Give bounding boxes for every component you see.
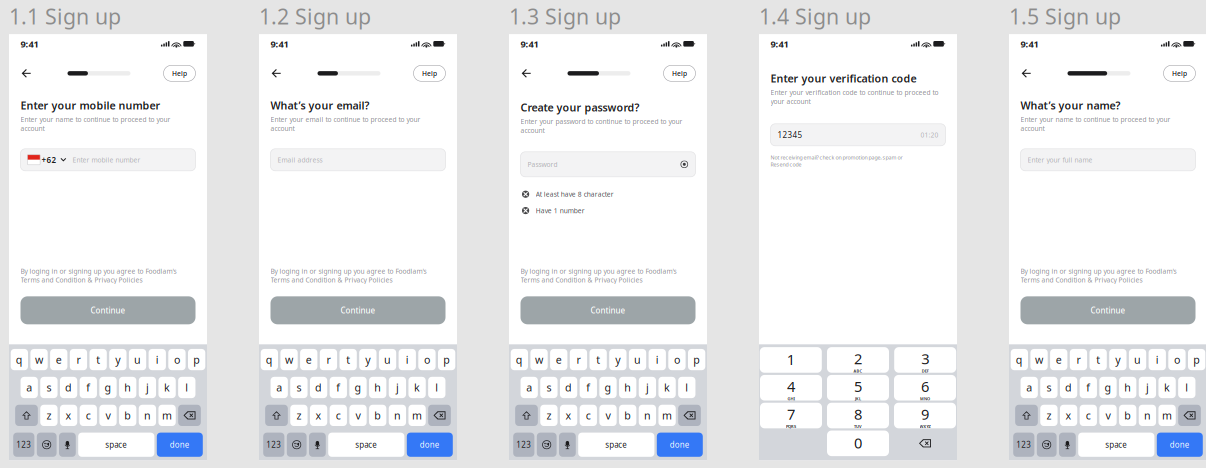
button[interactable]: e bbox=[550, 349, 567, 370]
button[interactable]: n bbox=[639, 405, 656, 426]
button[interactable]: 3 bbox=[894, 347, 956, 373]
button[interactable]: k bbox=[158, 377, 176, 398]
button[interactable]: h bbox=[1119, 377, 1136, 398]
button[interactable]: q bbox=[261, 349, 278, 370]
button[interactable]: p bbox=[188, 349, 205, 370]
button[interactable]: i bbox=[149, 349, 166, 370]
button[interactable]: Shift bbox=[265, 405, 288, 426]
button[interactable]: 12345 bbox=[770, 124, 945, 146]
button[interactable]: 123 bbox=[1013, 433, 1034, 457]
button[interactable]: l bbox=[678, 377, 695, 398]
button[interactable]: a bbox=[21, 377, 38, 398]
button[interactable]: q bbox=[11, 349, 28, 370]
button[interactable]: o bbox=[418, 349, 436, 370]
button[interactable]: space bbox=[1078, 433, 1154, 457]
button[interactable]: 0 bbox=[827, 430, 889, 456]
button[interactable]: d bbox=[1060, 377, 1077, 398]
button[interactable]: h bbox=[619, 377, 636, 398]
button[interactable]: space bbox=[328, 433, 404, 457]
button[interactable]: 1 bbox=[760, 347, 822, 373]
button[interactable]: b bbox=[369, 405, 386, 426]
button[interactable]: i bbox=[649, 349, 666, 370]
button[interactable]: k bbox=[658, 377, 676, 398]
button[interactable]: c bbox=[80, 405, 97, 426]
button[interactable]: r bbox=[320, 349, 337, 370]
button[interactable]: Shift bbox=[515, 405, 538, 426]
button[interactable]: o bbox=[1168, 349, 1186, 370]
button[interactable]: done bbox=[657, 433, 703, 457]
button[interactable]: w bbox=[530, 349, 548, 370]
button[interactable]: j bbox=[639, 377, 656, 398]
button[interactable]: Emoji bbox=[287, 433, 307, 457]
button[interactable]: x bbox=[310, 405, 327, 426]
button[interactable]: 6 bbox=[894, 375, 956, 400]
button[interactable]: l bbox=[1178, 377, 1195, 398]
button[interactable]: m bbox=[1158, 405, 1176, 426]
button[interactable]: o bbox=[668, 349, 686, 370]
button[interactable]: Help bbox=[1163, 65, 1195, 81]
button[interactable]: e bbox=[300, 349, 317, 370]
button[interactable]: Enter your full name bbox=[1020, 149, 1195, 171]
button[interactable]: a bbox=[1021, 377, 1038, 398]
button[interactable]: i bbox=[399, 349, 416, 370]
button[interactable]: Emoji bbox=[537, 433, 557, 457]
button[interactable]: Shift bbox=[1015, 405, 1038, 426]
button[interactable]: t bbox=[1089, 349, 1107, 370]
button[interactable]: v bbox=[349, 405, 367, 426]
button[interactable]: w bbox=[30, 349, 48, 370]
button[interactable]: i bbox=[1149, 349, 1166, 370]
button[interactable]: done bbox=[1157, 433, 1203, 457]
button[interactable]: Dictation bbox=[309, 433, 326, 457]
button[interactable]: 4 bbox=[760, 375, 822, 400]
button[interactable]: Delete bbox=[178, 405, 201, 426]
button[interactable]: Delete bbox=[1178, 405, 1201, 426]
button[interactable]: y bbox=[609, 349, 626, 370]
button[interactable]: v bbox=[99, 405, 117, 426]
button[interactable]: d bbox=[60, 377, 77, 398]
button[interactable]: j bbox=[139, 377, 156, 398]
button[interactable]: +62 bbox=[20, 149, 195, 171]
button[interactable]: 8 bbox=[827, 403, 889, 428]
button[interactable]: space bbox=[578, 433, 654, 457]
button[interactable]: h bbox=[369, 377, 386, 398]
button[interactable]: n bbox=[139, 405, 156, 426]
button[interactable]: Delete bbox=[894, 430, 956, 456]
button[interactable]: Continue bbox=[270, 296, 445, 324]
button[interactable]: v bbox=[599, 405, 617, 426]
button[interactable]: m bbox=[408, 405, 426, 426]
button[interactable]: l bbox=[178, 377, 195, 398]
button[interactable]: 123 bbox=[513, 433, 534, 457]
button[interactable]: Password bbox=[520, 152, 695, 177]
button[interactable]: s bbox=[540, 377, 558, 398]
button[interactable]: t bbox=[589, 349, 607, 370]
button[interactable]: e bbox=[50, 349, 67, 370]
button[interactable]: m bbox=[658, 405, 676, 426]
button[interactable]: s bbox=[1040, 377, 1057, 398]
button[interactable]: 123 bbox=[263, 433, 284, 457]
button[interactable]: p bbox=[438, 349, 455, 370]
button[interactable]: l bbox=[428, 377, 445, 398]
button[interactable]: Continue bbox=[1020, 296, 1195, 324]
button[interactable]: e bbox=[1050, 349, 1067, 370]
button[interactable]: z bbox=[540, 405, 558, 426]
button[interactable]: done bbox=[157, 433, 203, 457]
button[interactable]: Help bbox=[163, 65, 195, 81]
button[interactable]: 5 bbox=[827, 375, 889, 400]
button[interactable]: Delete bbox=[428, 405, 451, 426]
button[interactable]: y bbox=[1109, 349, 1126, 370]
button[interactable]: b bbox=[619, 405, 636, 426]
button[interactable]: x bbox=[1060, 405, 1077, 426]
button[interactable]: t bbox=[89, 349, 107, 370]
button[interactable]: v bbox=[1099, 405, 1117, 426]
button[interactable]: Email address bbox=[270, 149, 445, 171]
button[interactable]: Emoji bbox=[1037, 433, 1057, 457]
button[interactable]: z bbox=[1040, 405, 1057, 426]
button[interactable]: w bbox=[280, 349, 298, 370]
button[interactable]: f bbox=[1080, 377, 1097, 398]
button[interactable]: Delete bbox=[678, 405, 701, 426]
button[interactable]: u bbox=[379, 349, 396, 370]
button[interactable]: j bbox=[389, 377, 406, 398]
button[interactable]: q bbox=[1011, 349, 1028, 370]
button[interactable]: Back bbox=[20, 65, 37, 81]
button[interactable]: y bbox=[109, 349, 126, 370]
